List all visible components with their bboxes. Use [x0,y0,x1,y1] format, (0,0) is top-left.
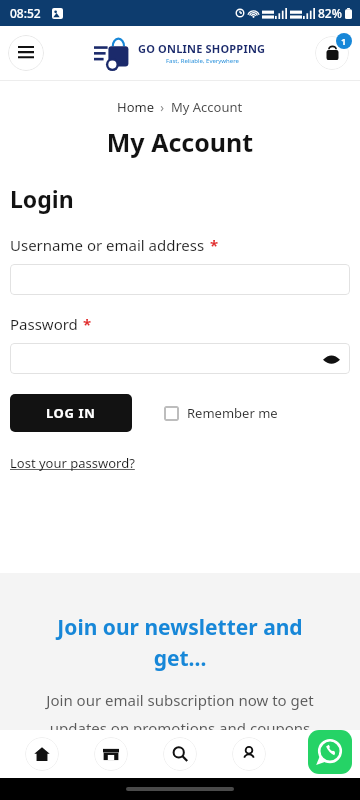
button[interactable]: Home [25,737,59,771]
button[interactable]: Shop [94,737,128,771]
button[interactable] [10,264,350,295]
staticText: * [210,235,219,255]
staticText: My Account [0,125,360,159]
button[interactable]: Show password [10,343,350,374]
staticText: Login [10,183,74,214]
button[interactable]: Cart [315,36,349,70]
staticText: Lost your password? [10,454,135,472]
button[interactable]: Search [163,737,197,771]
staticText: Username or email address [10,235,205,255]
staticText: › [154,99,171,115]
staticText: GO ONLINE SHOPPING [138,41,266,56]
staticText: My Account [171,98,243,116]
staticText: LOG IN [46,404,96,422]
staticText: 1 [341,35,347,47]
staticText: * [83,314,92,334]
staticText: 82% [318,5,342,21]
button[interactable]: Home [117,98,154,116]
button[interactable]: Menu [8,35,44,71]
staticText: 08:52 [10,5,41,21]
staticText: Fast, Reliable, Everywhere [166,57,239,65]
button[interactable]: WhatsApp [308,730,352,774]
staticText: Home [117,98,154,116]
button[interactable]: Lost your password? [10,454,135,472]
button[interactable]: Remember me [164,404,278,422]
button[interactable]: Show password [321,349,341,369]
button[interactable]: LOG IN [10,394,132,432]
staticText: Password [10,314,78,334]
button[interactable]: Account [232,737,266,771]
staticText: Join our newsletter and get... [30,613,330,672]
staticText: Join our email subscription now to get u… [26,690,334,738]
staticText: Remember me [187,404,278,422]
